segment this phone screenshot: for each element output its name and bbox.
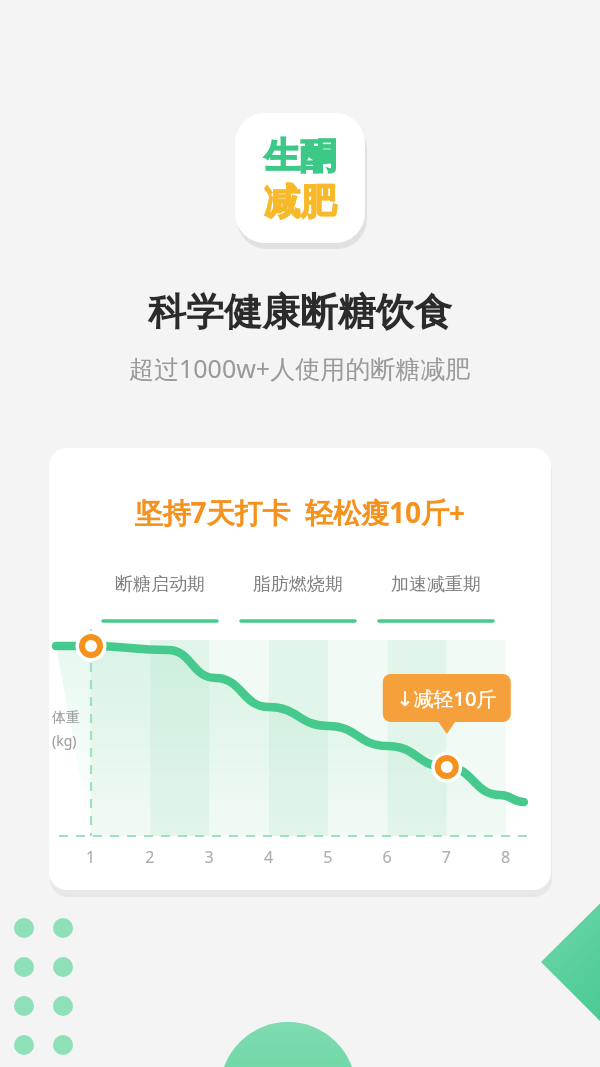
button[interactable]: 生酮减肥 引导页 [0,0,600,1067]
